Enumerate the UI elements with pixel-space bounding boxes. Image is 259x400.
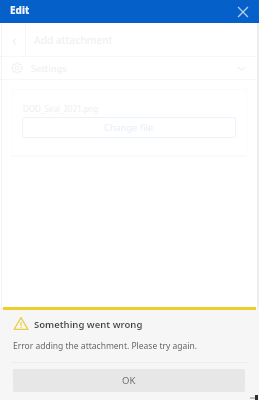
staticText: Something went wrong — [34, 318, 143, 331]
staticText: Edit — [10, 3, 30, 17]
button[interactable]: Close — [235, 4, 251, 20]
button[interactable]: Change file — [22, 117, 236, 138]
staticText: OK — [122, 374, 136, 387]
staticText: Settings — [31, 62, 67, 75]
button[interactable]: OK — [13, 369, 245, 392]
staticText: DOD_Seal_2021.png — [23, 103, 99, 114]
staticText: Change file — [104, 121, 154, 134]
staticText: Error adding the attachment. Please try … — [13, 340, 198, 352]
staticText: Add attachment — [34, 33, 113, 47]
